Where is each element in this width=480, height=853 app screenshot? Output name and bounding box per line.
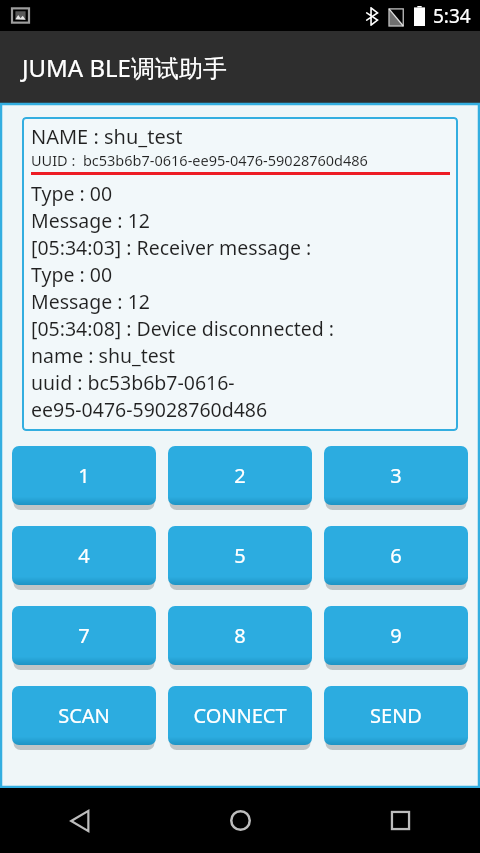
staticText: 7 <box>78 622 90 649</box>
staticText: JUMA BLE调试助手 <box>22 51 227 84</box>
button[interactable]: SCAN <box>12 686 156 748</box>
button[interactable]: 1 <box>12 446 156 508</box>
staticText: 8 <box>234 622 246 649</box>
staticText: 2 <box>234 462 246 489</box>
button[interactable]: Back <box>0 788 160 853</box>
staticText: UUID : bc53b6b7-0616-ee95-0476-59028760d… <box>31 150 368 170</box>
staticText: SCAN <box>58 702 110 729</box>
staticText: Message : 12 <box>31 207 150 234</box>
button[interactable]: 4 <box>12 526 156 588</box>
staticText: NAME : shu_test <box>31 123 183 150</box>
staticText: Type : 00 <box>31 180 113 207</box>
staticText: [05:34:08] : Device disconnected : <box>31 315 335 342</box>
button[interactable]: 8 <box>168 606 312 668</box>
staticText: 5:34 <box>433 3 471 29</box>
button[interactable]: 5 <box>168 526 312 588</box>
button[interactable]: 2 <box>168 446 312 508</box>
staticText: Type : 00 <box>31 261 113 288</box>
staticText: 9 <box>390 622 402 649</box>
staticText: 1 <box>78 462 90 489</box>
staticText: uuid : bc53b6b7-0616- <box>31 369 235 396</box>
staticText: CONNECT <box>193 702 287 729</box>
staticText: [05:34:03] : Receiver message : <box>31 234 312 261</box>
button[interactable]: SEND <box>324 686 468 748</box>
button[interactable]: Home <box>160 788 320 853</box>
button[interactable]: 7 <box>12 606 156 668</box>
button[interactable]: 3 <box>324 446 468 508</box>
button[interactable]: 6 <box>324 526 468 588</box>
staticText: 5 <box>234 542 246 569</box>
button[interactable]: CONNECT <box>168 686 312 748</box>
staticText: 6 <box>390 542 402 569</box>
staticText: SEND <box>370 702 422 729</box>
staticText: 4 <box>78 542 90 569</box>
button[interactable]: Recent apps <box>320 788 480 853</box>
staticText: name : shu_test <box>31 342 176 369</box>
staticText: 3 <box>390 462 402 489</box>
staticText: ee95-0476-59028760d486 <box>31 396 268 423</box>
button[interactable]: 9 <box>324 606 468 668</box>
staticText: Message : 12 <box>31 288 150 315</box>
